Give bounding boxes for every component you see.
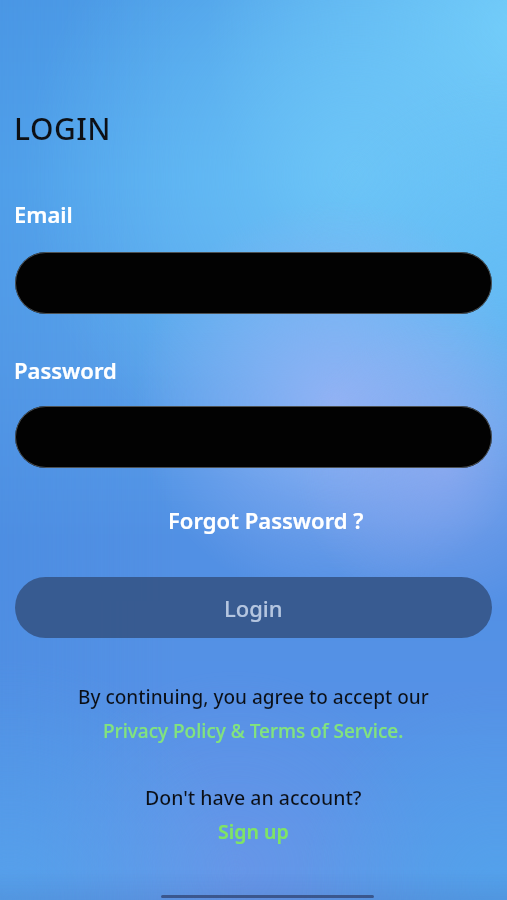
staticText: By continuing, you agree to accept our (78, 684, 429, 710)
staticText: Email (14, 199, 73, 229)
button[interactable]: Login (15, 577, 492, 638)
staticText: Password (14, 355, 117, 385)
button[interactable]: Sign up (218, 818, 289, 845)
button[interactable] (15, 406, 492, 468)
button[interactable]: Privacy Policy & Terms of Service. (103, 718, 404, 744)
staticText: Login (224, 593, 283, 623)
button[interactable] (15, 252, 492, 314)
button[interactable]: Forgot Password ? (168, 505, 364, 535)
staticText: Don't have an account? (145, 784, 362, 811)
staticText: LOGIN (14, 108, 112, 149)
